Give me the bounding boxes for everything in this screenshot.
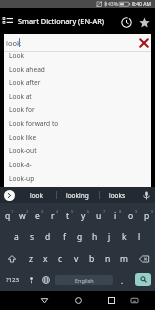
staticText: v xyxy=(74,253,79,265)
staticText: 9 xyxy=(135,209,138,214)
staticText: Look after xyxy=(9,78,41,87)
staticText: r xyxy=(51,210,55,222)
button[interactable]: g xyxy=(72,226,87,248)
button[interactable]: Search xyxy=(135,273,151,286)
staticText: Look forward to xyxy=(9,119,59,128)
button[interactable]: Voice input xyxy=(139,187,153,203)
staticText: Look-out xyxy=(9,146,37,155)
button[interactable]: Look for xyxy=(4,102,151,116)
staticText: English xyxy=(75,277,94,284)
staticText: 8:40 AM xyxy=(132,1,151,8)
staticText: w xyxy=(19,210,26,222)
staticText: g xyxy=(77,231,83,243)
button[interactable]: t xyxy=(60,205,75,227)
button[interactable]: History xyxy=(118,14,134,30)
button[interactable]: Back xyxy=(36,291,52,310)
button[interactable]: Favourites xyxy=(136,14,152,30)
staticText: Look-up xyxy=(9,174,35,183)
staticText: f xyxy=(63,231,66,243)
button[interactable]: Look like xyxy=(4,130,151,144)
staticText: 0 xyxy=(151,209,154,214)
button[interactable]: Emoji xyxy=(25,269,38,291)
staticText: Look ahead xyxy=(9,65,45,74)
button[interactable]: More suggestions xyxy=(2,188,16,202)
staticText: t xyxy=(66,210,70,222)
button[interactable]: ?123 xyxy=(0,269,25,291)
button[interactable]: Look-up xyxy=(4,171,151,185)
staticText: Smart Dictionary (EN-AR) xyxy=(18,16,104,26)
button[interactable]: o xyxy=(123,205,139,227)
button[interactable]: y xyxy=(75,205,91,227)
button[interactable]: Home xyxy=(70,291,86,310)
button[interactable]: h xyxy=(87,226,102,248)
button[interactable]: s xyxy=(24,226,40,248)
button[interactable]: Recent apps xyxy=(103,291,119,310)
button[interactable]: u xyxy=(91,205,107,227)
staticText: s xyxy=(30,231,35,243)
button[interactable]: k xyxy=(117,226,132,248)
button[interactable]: Hide keyboard xyxy=(126,291,142,310)
staticText: l xyxy=(138,231,141,243)
button[interactable]: p xyxy=(139,205,155,227)
staticText: q xyxy=(5,210,11,222)
button[interactable]: Look ahead xyxy=(4,62,151,76)
button[interactable]: w xyxy=(15,205,30,227)
staticText: j xyxy=(108,231,111,243)
button[interactable]: l xyxy=(132,226,147,248)
button[interactable]: Look-out xyxy=(4,143,151,157)
button[interactable]: . xyxy=(115,269,129,291)
button[interactable]: Look-a- xyxy=(4,157,151,171)
staticText: 3 xyxy=(41,209,44,214)
button[interactable]: r xyxy=(45,205,60,227)
staticText: Look like xyxy=(9,133,37,142)
staticText: 2 xyxy=(26,209,29,214)
staticText: y xyxy=(81,210,86,222)
button[interactable]: Look after xyxy=(4,75,151,89)
button[interactable]: looks xyxy=(96,187,138,203)
button[interactable]: f xyxy=(56,226,72,248)
button[interactable]: Backspace xyxy=(132,248,155,270)
staticText: 4 xyxy=(56,209,59,214)
button[interactable]: Clear search xyxy=(137,36,151,50)
button[interactable]: e xyxy=(30,205,45,227)
button[interactable]: q xyxy=(0,205,15,227)
button[interactable]: b xyxy=(84,248,100,270)
button[interactable]: x xyxy=(38,248,53,270)
staticText: look xyxy=(30,191,44,200)
staticText: n xyxy=(105,253,111,265)
staticText: h xyxy=(92,231,98,243)
button[interactable]: look xyxy=(4,34,151,51)
staticText: k xyxy=(122,231,127,243)
staticText: a xyxy=(14,231,19,243)
button[interactable]: z xyxy=(23,248,38,270)
staticText: 7 xyxy=(103,209,106,214)
staticText: x xyxy=(43,253,48,265)
staticText: ?123 xyxy=(6,276,19,284)
staticText: . xyxy=(121,275,124,286)
button[interactable]: Open menu xyxy=(0,12,16,28)
button[interactable]: Space xyxy=(55,275,113,285)
staticText: 1 xyxy=(11,209,14,214)
button[interactable]: a xyxy=(8,226,24,248)
staticText: o xyxy=(128,210,134,222)
button[interactable]: i xyxy=(107,205,123,227)
button[interactable]: looking xyxy=(56,187,98,203)
button[interactable]: Look forward to xyxy=(4,116,151,130)
button[interactable]: Change keyboard language xyxy=(39,269,53,291)
button[interactable]: v xyxy=(68,248,84,270)
button[interactable]: Look xyxy=(4,48,151,62)
button[interactable]: j xyxy=(102,226,117,248)
button[interactable]: d xyxy=(40,226,56,248)
staticText: m xyxy=(120,253,128,265)
button[interactable]: m xyxy=(116,248,132,270)
staticText: 43% xyxy=(108,1,118,8)
button[interactable]: look xyxy=(16,187,58,203)
button[interactable]: n xyxy=(100,248,116,270)
button[interactable]: c xyxy=(53,248,68,270)
staticText: i xyxy=(114,210,117,222)
button[interactable]: Shift xyxy=(0,248,23,270)
staticText: looking xyxy=(66,191,89,200)
staticText: Look xyxy=(9,51,24,60)
staticText: u xyxy=(96,210,102,222)
button[interactable]: Look at xyxy=(4,89,151,103)
